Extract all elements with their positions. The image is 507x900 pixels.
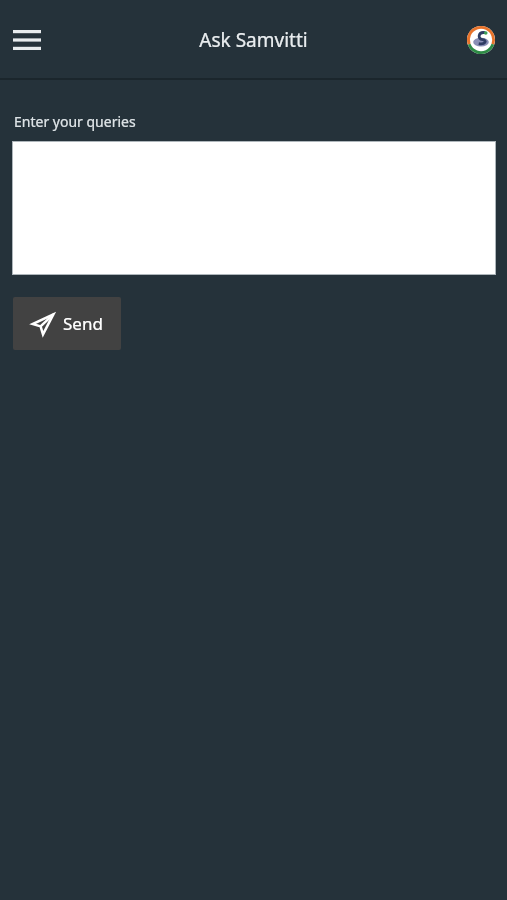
button[interactable]: Send xyxy=(13,297,121,350)
button[interactable]: Open navigation menu xyxy=(4,17,50,63)
staticText: Enter your queries xyxy=(14,112,136,131)
staticText: Ask Samvitti xyxy=(199,27,308,53)
button[interactable]: Samvitti logo xyxy=(465,24,497,56)
button[interactable]: Query input field xyxy=(12,141,496,275)
staticText: Send xyxy=(63,312,103,335)
